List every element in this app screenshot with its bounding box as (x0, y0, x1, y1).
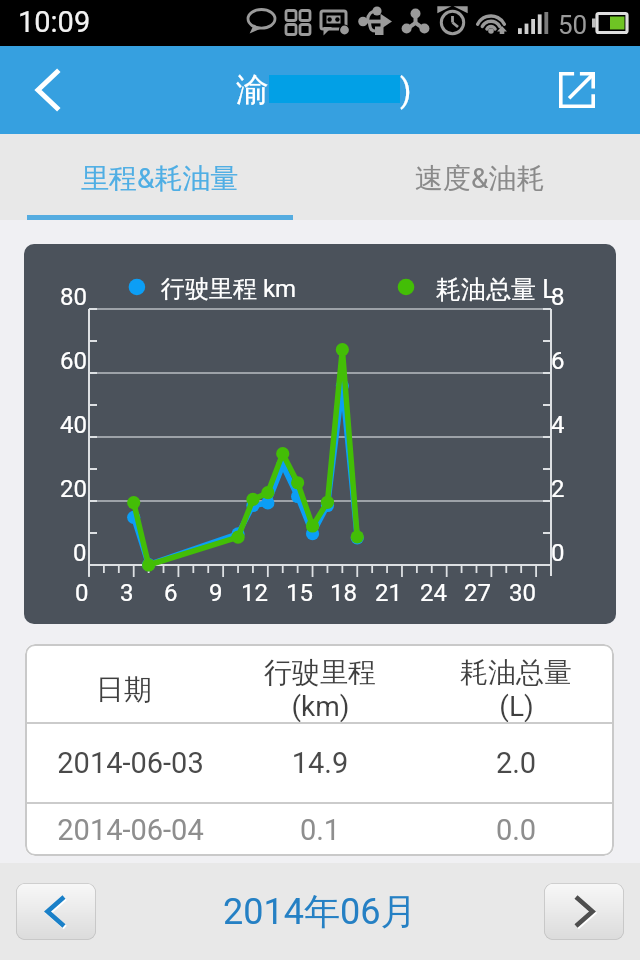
staticText: 14.9 (222, 746, 418, 780)
staticText: (L) (499, 690, 534, 723)
staticText: 18 (330, 579, 357, 607)
button[interactable]: 2014-06-04 (25, 804, 614, 856)
staticText: 0 (551, 539, 565, 567)
staticText: 8 (551, 283, 565, 311)
staticText: 0.0 (418, 813, 614, 847)
staticText: 2014-06-04 (32, 813, 229, 847)
staticText: 12 (241, 579, 268, 607)
staticText: 4 (551, 411, 565, 439)
button[interactable]: 里程&耗油量 (0, 134, 320, 220)
button[interactable]: Previous month (16, 883, 96, 940)
staticText: (km) (291, 690, 350, 723)
staticText: 2014-06-03 (32, 746, 229, 780)
staticText: 3 (120, 579, 134, 607)
staticText: 30 (509, 579, 536, 607)
staticText: 27 (464, 579, 491, 607)
staticText: 里程&耗油量 (81, 161, 239, 196)
staticText: ) (400, 71, 412, 110)
button[interactable]: 2014-06-03 (25, 724, 614, 802)
staticText: 0.1 (222, 813, 418, 847)
button[interactable]: Back (0, 46, 94, 134)
staticText: 2014年06月 (223, 889, 417, 934)
staticText: 耗油总量 L (436, 274, 556, 305)
staticText: 9 (209, 579, 223, 607)
button[interactable]: 速度&油耗 (320, 134, 640, 220)
staticText: 渝 (236, 69, 269, 111)
staticText: 行驶里程 km (161, 274, 297, 304)
staticText: 60 (60, 347, 87, 375)
staticText: 2 (551, 475, 565, 503)
staticText: 日期 (96, 672, 152, 707)
staticText: 6 (551, 347, 565, 375)
staticText: 耗油总量 (460, 655, 572, 690)
staticText: 21 (375, 579, 402, 607)
staticText: 15 (286, 579, 313, 607)
button[interactable]: Share (546, 46, 640, 134)
staticText: 50 (558, 10, 588, 40)
staticText: 0 (73, 539, 87, 567)
staticText: 10:09 (18, 5, 91, 39)
staticText: 速度&油耗 (415, 161, 545, 196)
staticText: 6 (164, 579, 178, 607)
staticText: 2.0 (418, 746, 614, 780)
staticText: 20 (60, 475, 87, 503)
staticText: 24 (420, 579, 447, 607)
staticText: 0 (75, 579, 89, 607)
button[interactable]: Next month (544, 883, 624, 940)
staticText: 80 (60, 283, 87, 311)
staticText: 行驶里程 (264, 655, 376, 690)
staticText: 40 (60, 411, 87, 439)
